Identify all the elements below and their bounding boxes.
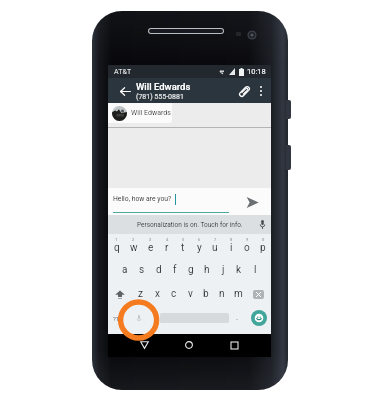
button[interactable]: h	[199, 258, 215, 282]
button[interactable]: d	[150, 258, 167, 282]
button[interactable]: 9	[239, 234, 255, 258]
staticText: n	[219, 288, 225, 300]
staticText: q	[114, 242, 120, 254]
button[interactable]: 8	[223, 234, 239, 258]
staticText: l	[254, 264, 257, 276]
staticText: x	[155, 288, 160, 300]
button[interactable]: a	[116, 258, 133, 282]
staticText: 2	[132, 237, 135, 242]
button[interactable]: m	[230, 282, 246, 306]
button[interactable]: 0	[255, 234, 271, 258]
staticText: k	[236, 264, 242, 276]
button[interactable]: More options	[252, 82, 269, 99]
button[interactable]: Shift	[108, 282, 132, 306]
staticText: 7	[214, 237, 217, 242]
staticText: w	[130, 242, 138, 254]
button[interactable]: Back	[115, 81, 135, 101]
staticText: ?1	[113, 315, 120, 322]
staticText: 3	[149, 237, 152, 242]
staticText: o	[244, 242, 250, 254]
button[interactable]: Home	[178, 334, 200, 356]
staticText: Will Edwards	[136, 81, 191, 92]
button[interactable]: Personalization is on. Touch for info.	[108, 215, 271, 234]
button[interactable]: Emoji	[251, 310, 267, 326]
staticText: Will Edwards	[131, 109, 171, 117]
staticText: p	[260, 242, 266, 254]
button[interactable]: Voice input	[126, 306, 152, 330]
button[interactable]: Recent apps	[223, 334, 245, 356]
button[interactable]: x	[149, 282, 166, 306]
button[interactable]: v	[182, 282, 198, 306]
button[interactable]: Send	[242, 192, 262, 212]
staticText: m	[234, 288, 243, 300]
staticText: z	[138, 288, 143, 300]
button[interactable]: g	[183, 258, 199, 282]
staticText: (781) 555-0881	[136, 93, 184, 101]
staticText: g	[188, 264, 194, 276]
staticText: t	[181, 242, 185, 254]
button[interactable]: 7	[207, 234, 223, 258]
button[interactable]: 3	[142, 234, 159, 258]
staticText: 0	[262, 237, 265, 242]
staticText: 10:18	[247, 67, 266, 76]
staticText: u	[212, 242, 218, 254]
staticText: Hello, how are you?	[113, 195, 172, 203]
staticText: y	[197, 242, 202, 254]
button[interactable]: Backspace	[246, 282, 271, 306]
button[interactable]: Attach file	[234, 81, 254, 101]
staticText: v	[188, 288, 193, 300]
staticText: .	[236, 313, 239, 322]
staticText: h	[204, 264, 210, 276]
staticText: 8	[230, 237, 233, 242]
staticText: d	[156, 264, 162, 276]
button[interactable]: Back	[133, 334, 155, 356]
staticText: j	[222, 264, 225, 276]
button[interactable]: Will Edwards	[108, 103, 172, 123]
button[interactable]: 1	[108, 234, 125, 258]
staticText: 9	[246, 237, 249, 242]
button[interactable]: j	[215, 258, 231, 282]
staticText: 5	[182, 237, 185, 242]
staticText: r	[165, 242, 169, 254]
staticText: 6	[198, 237, 201, 242]
staticText: AT&T	[114, 68, 132, 76]
staticText: e	[148, 242, 154, 254]
button[interactable]: z	[132, 282, 149, 306]
staticText: a	[122, 264, 128, 276]
staticText: s	[139, 264, 145, 276]
staticText: 4	[166, 237, 169, 242]
button[interactable]: k	[231, 258, 247, 282]
button[interactable]: f	[167, 258, 183, 282]
button[interactable]: b	[198, 282, 214, 306]
button[interactable]: 4	[159, 234, 175, 258]
button[interactable]: .	[230, 306, 244, 330]
button[interactable]: 6	[191, 234, 207, 258]
staticText: b	[203, 288, 209, 300]
button[interactable]: n	[214, 282, 230, 306]
button[interactable]: 5	[175, 234, 191, 258]
button[interactable]: c	[166, 282, 182, 306]
button[interactable]: Symbols	[108, 306, 124, 330]
button[interactable]: s	[133, 258, 150, 282]
button[interactable]: 2	[125, 234, 142, 258]
staticText: f	[173, 264, 177, 276]
button[interactable]: l	[247, 258, 263, 282]
staticText: Personalization is on. Touch for info.	[137, 221, 243, 229]
staticText: 1	[115, 237, 118, 242]
staticText: i	[230, 242, 233, 254]
staticText: c	[171, 288, 177, 300]
